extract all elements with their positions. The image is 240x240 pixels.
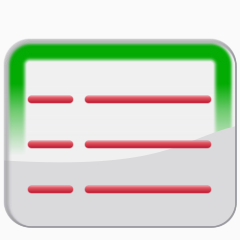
button[interactable]: List [4,39,236,227]
